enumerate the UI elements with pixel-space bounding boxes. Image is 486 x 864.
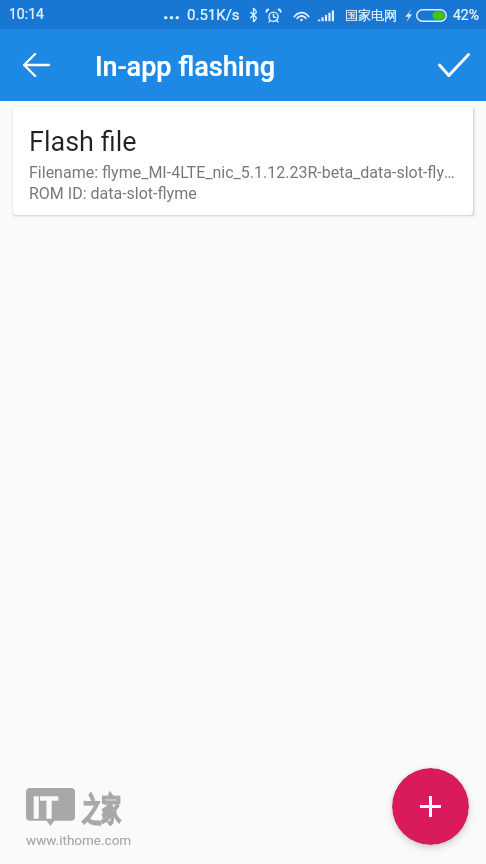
staticText: ROM ID: data-slot-flyme (29, 184, 197, 203)
staticText: 0.51K/s (187, 6, 240, 24)
staticText: IT (32, 790, 59, 825)
staticText: 42% (453, 7, 479, 23)
staticText: 国家电网 (345, 7, 397, 23)
button[interactable]: Add (392, 768, 469, 845)
button[interactable]: Back (12, 41, 60, 89)
staticText: 10:14 (9, 6, 44, 22)
staticText: In-app flashing (95, 51, 276, 83)
staticText: 之家 (82, 790, 120, 830)
staticText: Flash file (29, 126, 137, 158)
staticText: Filename: flyme_MI-4LTE_nic_5.1.12.23R-b… (29, 163, 457, 182)
button[interactable]: Flash file (13, 107, 473, 215)
button[interactable]: Confirm (430, 41, 478, 89)
staticText: www.ithome.com (26, 832, 132, 848)
